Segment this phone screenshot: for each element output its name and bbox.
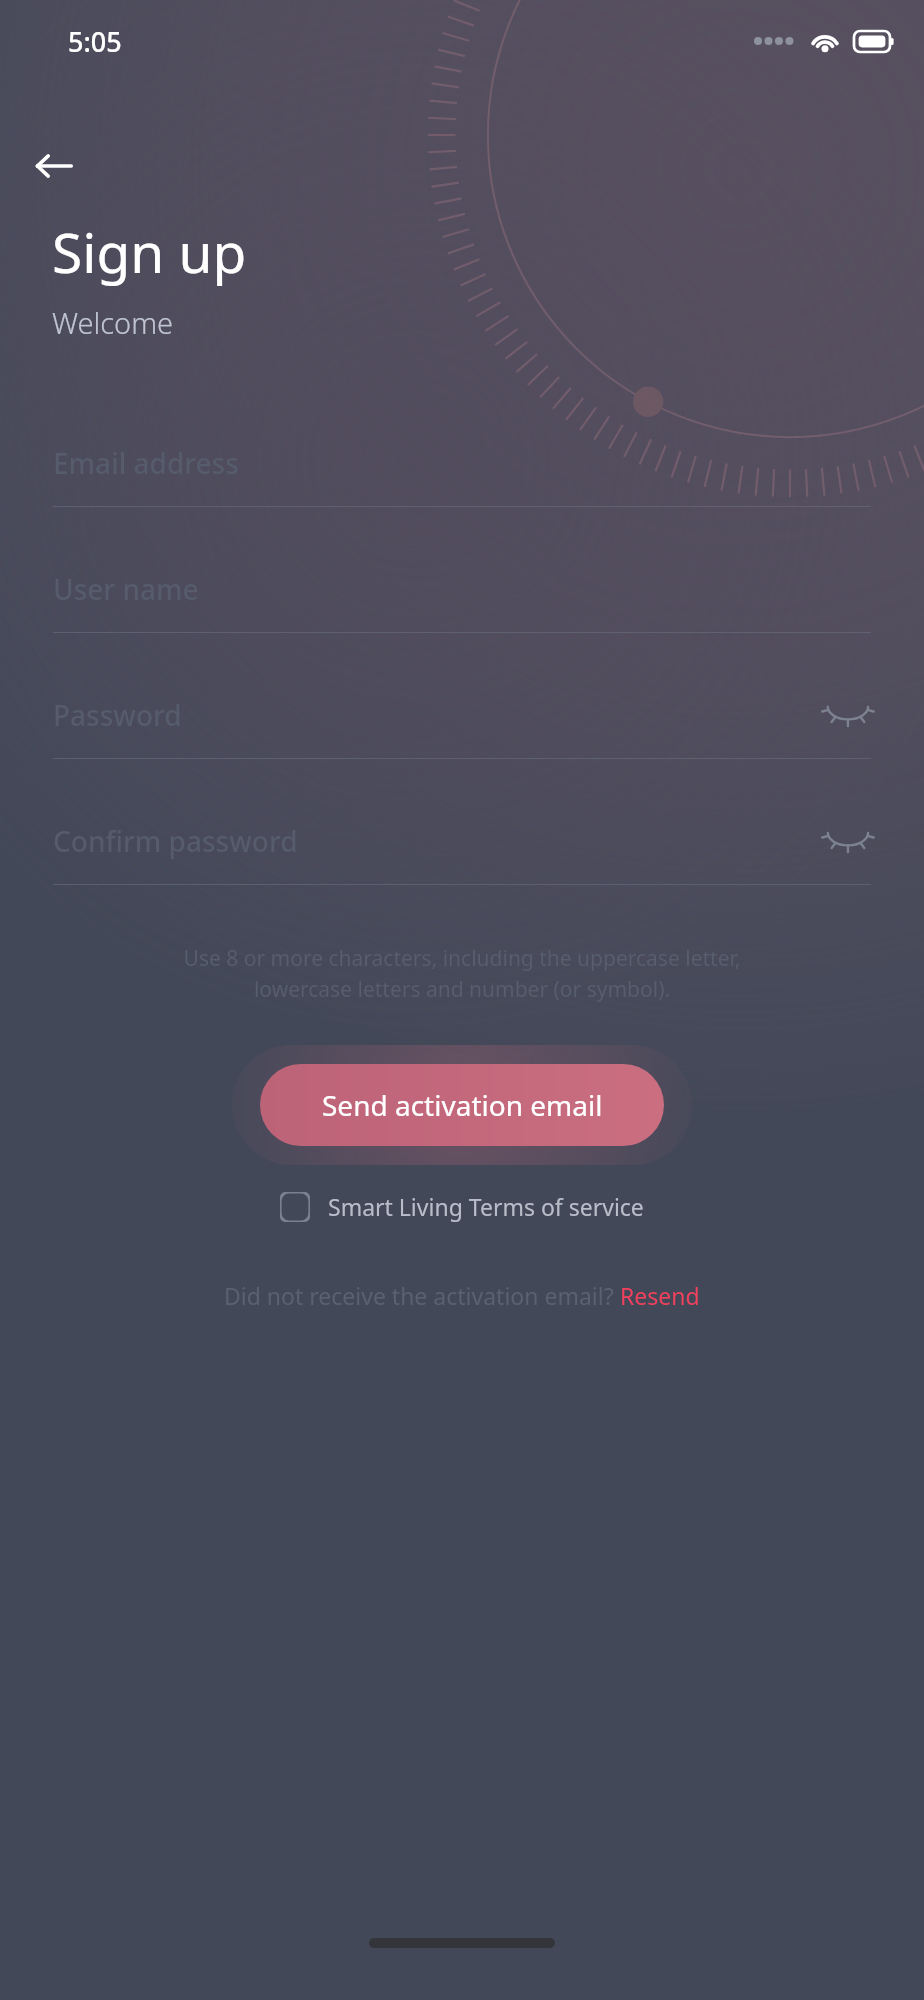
button[interactable]: Email address <box>53 420 871 506</box>
button[interactable]: Back <box>28 140 80 192</box>
staticText: Email address <box>53 444 239 482</box>
staticText: User name <box>53 570 199 608</box>
staticText: Welcome <box>52 303 174 342</box>
button[interactable]: Show password <box>823 824 871 858</box>
staticText: Resend <box>620 1280 700 1311</box>
button[interactable]: Resend <box>620 1280 700 1311</box>
staticText: Use 8 or more characters, including the … <box>58 944 866 1003</box>
button[interactable]: Send activation email <box>260 1064 664 1146</box>
button[interactable]: Confirm password <box>53 798 871 884</box>
staticText: Confirm password <box>53 822 298 860</box>
staticText: Password <box>53 696 182 734</box>
staticText: Smart Living Terms of service <box>328 1191 644 1222</box>
button[interactable]: Smart Living Terms of service <box>160 1191 764 1222</box>
button[interactable]: Show password <box>823 698 871 732</box>
button[interactable]: Password <box>53 672 871 758</box>
staticText: Sign up <box>52 214 247 289</box>
staticText: 5:05 <box>68 23 122 60</box>
staticText: Send activation email <box>322 1086 603 1124</box>
staticText: Did not receive the activation email? <box>224 1280 620 1311</box>
